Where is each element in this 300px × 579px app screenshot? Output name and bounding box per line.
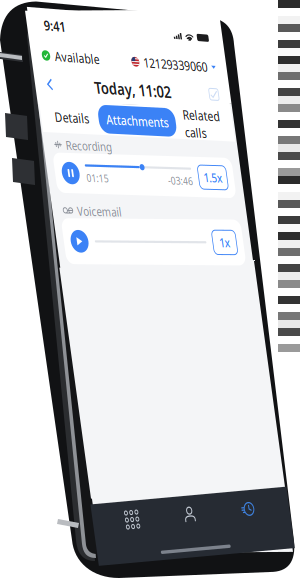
button[interactable]: Related calls <box>282 0 300 63</box>
button[interactable]: Keypad <box>42 0 115 55</box>
staticText: 9:41 <box>30 13 75 43</box>
staticText: Attachments <box>133 12 261 40</box>
staticText: Details <box>28 12 98 40</box>
button[interactable]: Play <box>28 10 64 46</box>
button[interactable]: Recents <box>273 0 300 56</box>
button[interactable]: Contacts <box>157 0 231 56</box>
button[interactable]: Attachments <box>118 3 276 49</box>
staticText: Today, 11:02 <box>118 7 275 43</box>
button[interactable]: Available <box>0 0 136 43</box>
staticText: Related calls <box>292 0 300 54</box>
staticText: -03:46 <box>243 25 294 48</box>
button[interactable]: Back <box>0 4 53 45</box>
button[interactable]: 12129339060 <box>202 0 300 43</box>
staticText: Recording <box>43 5 137 31</box>
staticText: Voicemail <box>49 8 139 34</box>
button[interactable]: Pause <box>28 12 64 48</box>
staticText: Available <box>44 7 136 35</box>
staticText: 12129339060 <box>226 7 300 35</box>
button[interactable]: Details <box>14 3 112 49</box>
